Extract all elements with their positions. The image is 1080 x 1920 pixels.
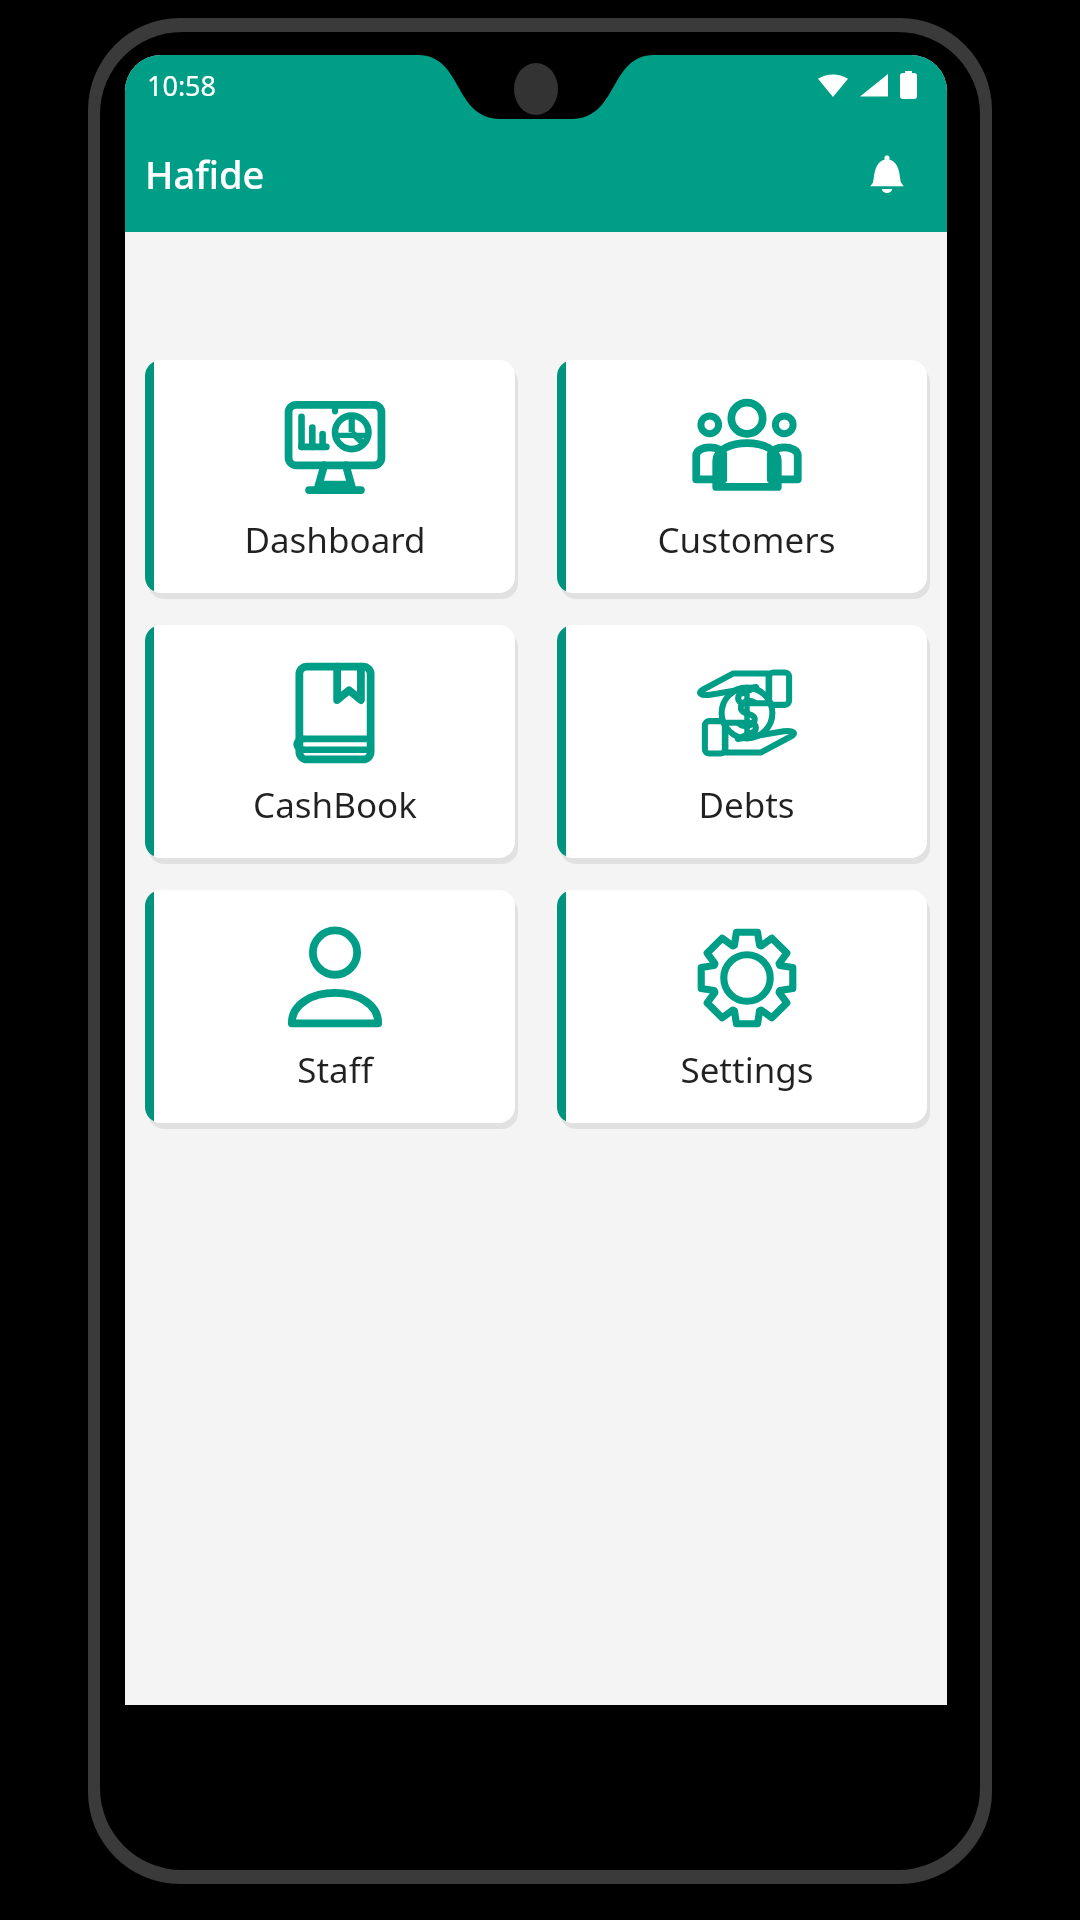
staticText: Dashboard bbox=[244, 516, 426, 564]
staticText: Hafide bbox=[145, 148, 265, 200]
staticText: Staff bbox=[297, 1046, 373, 1094]
button[interactable]: Staff bbox=[145, 890, 515, 1123]
button[interactable]: Customers bbox=[557, 360, 927, 593]
staticText: CashBook bbox=[253, 781, 417, 829]
staticText: Customers bbox=[657, 516, 836, 564]
staticText: 10:58 bbox=[147, 67, 217, 104]
button[interactable]: CashBook bbox=[145, 625, 515, 858]
staticText: Debts bbox=[698, 781, 795, 829]
staticText: Settings bbox=[680, 1046, 814, 1094]
button[interactable]: Settings bbox=[557, 890, 927, 1123]
button[interactable]: Debts bbox=[557, 625, 927, 858]
button[interactable]: Notifications bbox=[851, 138, 923, 210]
button[interactable]: Dashboard bbox=[145, 360, 515, 593]
